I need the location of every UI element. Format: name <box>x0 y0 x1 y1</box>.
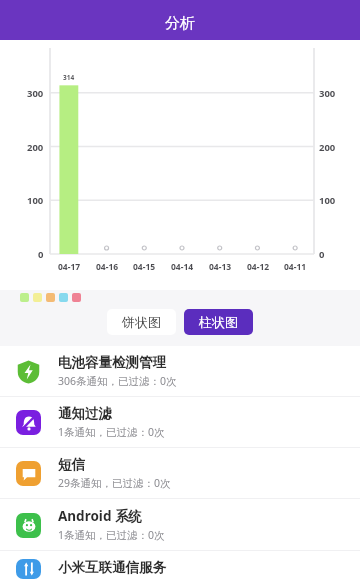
button[interactable]: 电池容量检测管理 <box>0 346 360 396</box>
staticText: 1条通知，已过滤：0次 <box>58 528 165 542</box>
staticText: 314 <box>63 73 75 82</box>
staticText: 200 <box>27 141 44 154</box>
button[interactable]: 通知过滤 <box>0 397 360 447</box>
staticText: 300 <box>27 87 44 100</box>
staticText: 04-17 <box>58 261 81 273</box>
staticText: 饼状图 <box>122 314 161 330</box>
staticText: 29条通知，已过滤：0次 <box>58 476 171 490</box>
button[interactable]: 短信 <box>0 448 360 498</box>
button[interactable]: 饼状图 <box>107 309 176 335</box>
staticText: 电池容量检测管理 <box>58 354 166 371</box>
staticText: 04-14 <box>171 261 194 273</box>
staticText: 100 <box>27 194 44 207</box>
staticText: 0 <box>319 248 325 261</box>
staticText: 04-13 <box>209 261 232 273</box>
staticText: 04-15 <box>133 261 156 273</box>
button[interactable]: 小米互联通信服务 <box>0 551 360 587</box>
staticText: 04-12 <box>247 261 270 273</box>
staticText: 300 <box>319 87 336 100</box>
staticText: 通知过滤 <box>58 405 112 422</box>
staticText: 100 <box>319 194 336 207</box>
staticText: 柱状图 <box>199 314 238 330</box>
staticText: 04-11 <box>284 261 307 273</box>
staticText: 1条通知，已过滤：0次 <box>58 425 165 439</box>
staticText: 0 <box>38 248 44 261</box>
staticText: 分析 <box>165 14 195 33</box>
staticText: 04-16 <box>96 261 119 273</box>
button[interactable]: 柱状图 <box>184 309 253 335</box>
staticText: 短信 <box>58 456 85 473</box>
button[interactable]: Android 系统 <box>0 499 360 550</box>
staticText: 306条通知，已过滤：0次 <box>58 374 177 388</box>
staticText: Android 系统 <box>58 507 142 525</box>
staticText: 200 <box>319 141 336 154</box>
staticText: 小米互联通信服务 <box>58 559 166 576</box>
